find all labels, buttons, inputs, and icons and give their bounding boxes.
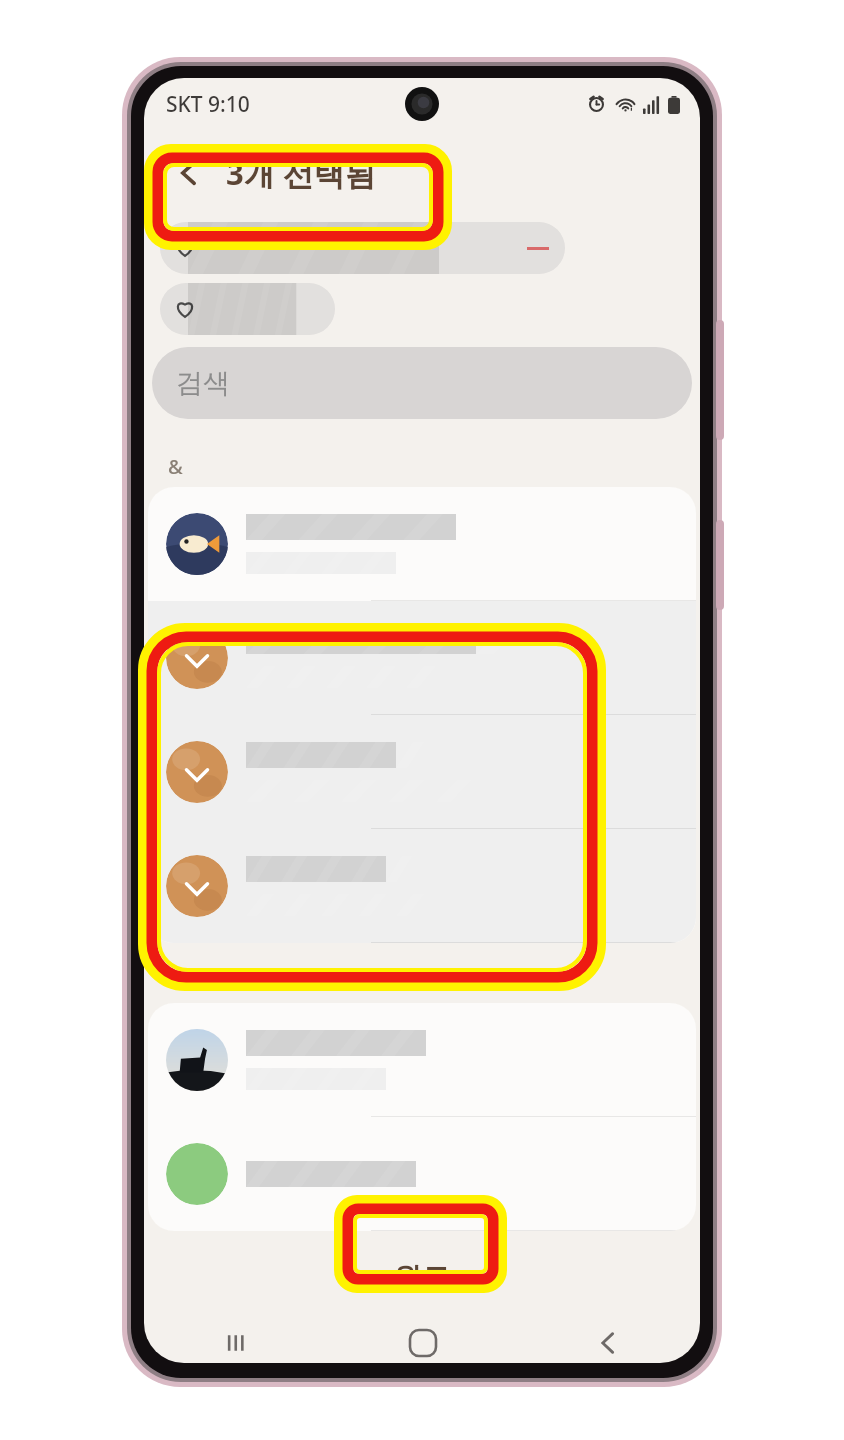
button[interactable] [160,222,565,274]
staticText: SKT 9:10 [166,90,250,119]
button[interactable]: Home [330,1323,515,1363]
button[interactable]: 검색 [152,347,692,419]
button[interactable] [148,829,696,943]
button[interactable] [148,487,696,601]
staticText: 검색 [176,366,230,400]
button[interactable] [148,601,696,715]
staticText: & [168,453,183,480]
button[interactable] [148,1117,696,1231]
button[interactable]: Back [162,146,216,200]
button[interactable] [148,715,696,829]
button[interactable]: Back [515,1323,700,1363]
button[interactable] [160,283,335,335]
staticText: 완료 [394,1260,450,1295]
button[interactable]: 완료 [264,1245,580,1309]
button[interactable]: Recents [144,1323,330,1363]
staticText: 3개 선택됨 [226,152,376,194]
staticText: ㄱ [168,970,188,995]
button[interactable] [148,1003,696,1117]
